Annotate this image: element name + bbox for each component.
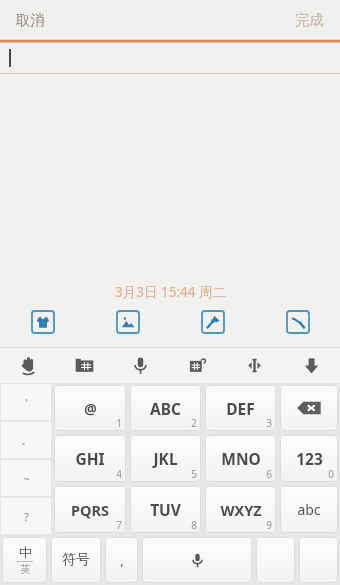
- button[interactable]: Delete: [280, 385, 338, 431]
- button[interactable]: Switch keypad: [169, 347, 226, 383]
- button[interactable]: DEF: [205, 385, 276, 431]
- button[interactable]: MNO: [205, 435, 276, 482]
- staticText: ABC: [150, 398, 181, 419]
- button[interactable]: 123: [280, 435, 338, 482]
- button[interactable]: JKL: [130, 435, 201, 482]
- button[interactable]: ABC: [130, 385, 201, 431]
- staticText: 中: [19, 544, 32, 560]
- button[interactable]: 完成: [285, 5, 334, 35]
- staticText: ~: [23, 471, 30, 486]
- button[interactable]: Draw sketch: [255, 303, 340, 341]
- staticText: 3: [266, 416, 272, 430]
- button[interactable]: Space, voice input: [142, 537, 252, 583]
- button[interactable]: Hide keyboard: [283, 347, 340, 383]
- button[interactable]: ?: [1, 498, 51, 534]
- button[interactable]: Voice input: [112, 347, 169, 383]
- staticText: 取消: [16, 11, 45, 29]
- staticText: 5: [191, 467, 197, 481]
- staticText: PQRS: [71, 500, 109, 520]
- staticText: GHI: [75, 448, 105, 469]
- button[interactable]: Insert picture: [85, 303, 170, 341]
- button[interactable]: WXYZ: [205, 486, 276, 533]
- button[interactable]: abc: [280, 486, 338, 533]
- staticText: 4: [116, 467, 122, 481]
- staticText: ': [25, 395, 28, 410]
- staticText: 1: [116, 416, 122, 430]
- staticText: TUV: [150, 499, 181, 520]
- button[interactable]: Insert clothing: [0, 303, 85, 341]
- staticText: 英: [20, 563, 31, 576]
- button[interactable]: Pin note: [170, 303, 255, 341]
- staticText: @: [84, 399, 97, 418]
- staticText: 9: [266, 518, 272, 532]
- staticText: 2: [191, 416, 197, 430]
- staticText: 0: [328, 467, 334, 481]
- staticText: 123: [296, 448, 323, 469]
- staticText: 完成: [295, 11, 324, 29]
- staticText: ?: [24, 509, 29, 524]
- button[interactable]: Keyboard layout: [56, 347, 112, 383]
- button[interactable]: ': [1, 384, 51, 420]
- button[interactable]: 符号: [51, 537, 101, 583]
- staticText: ,: [120, 551, 124, 569]
- button[interactable]: 中: [2, 537, 47, 583]
- staticText: 。: [21, 433, 32, 447]
- button[interactable]: [0, 43, 340, 73]
- button[interactable]: @: [54, 385, 126, 431]
- staticText: WXYZ: [220, 500, 262, 520]
- button[interactable]: Move cursor: [226, 347, 283, 383]
- button[interactable]: ,: [105, 537, 138, 583]
- staticText: MNO: [221, 448, 261, 469]
- staticText: 8: [191, 518, 197, 532]
- button[interactable]: TUV: [130, 486, 201, 533]
- staticText: DEF: [226, 398, 255, 419]
- staticText: 3月3日 15:44 周二: [115, 283, 226, 301]
- button[interactable]: GHI: [54, 435, 126, 482]
- button[interactable]: [299, 537, 338, 583]
- button[interactable]: PQRS: [54, 486, 126, 533]
- button[interactable]: [256, 537, 295, 583]
- staticText: 符号: [62, 551, 90, 569]
- staticText: 7: [116, 518, 122, 532]
- staticText: JKL: [153, 448, 178, 469]
- button[interactable]: 取消: [6, 5, 55, 35]
- button[interactable]: Handwriting input: [0, 347, 56, 383]
- button[interactable]: ~: [1, 460, 51, 496]
- staticText: 6: [266, 467, 272, 481]
- staticText: abc: [297, 500, 321, 519]
